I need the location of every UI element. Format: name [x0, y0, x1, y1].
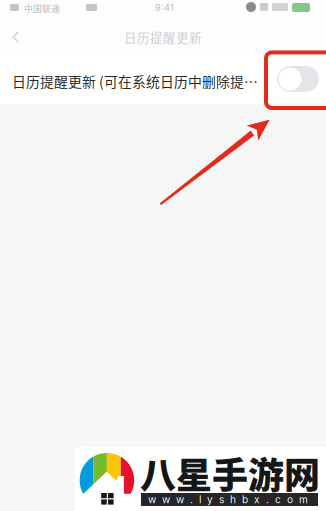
staticText: 9:41: [155, 2, 174, 13]
button[interactable]: Back: [2, 20, 30, 54]
staticText: w w w . l y s h b x . c o m: [148, 493, 308, 506]
staticText: 日历提醒更新 (可在系统日历中删除提示): [12, 71, 262, 91]
staticText: 日历提醒更新: [124, 28, 202, 46]
button[interactable]: 日历提醒更新 (可在系统日历中删除提示): [0, 54, 326, 104]
staticText: 八星手游网: [140, 447, 320, 499]
staticText: 中国联通: [24, 2, 60, 15]
